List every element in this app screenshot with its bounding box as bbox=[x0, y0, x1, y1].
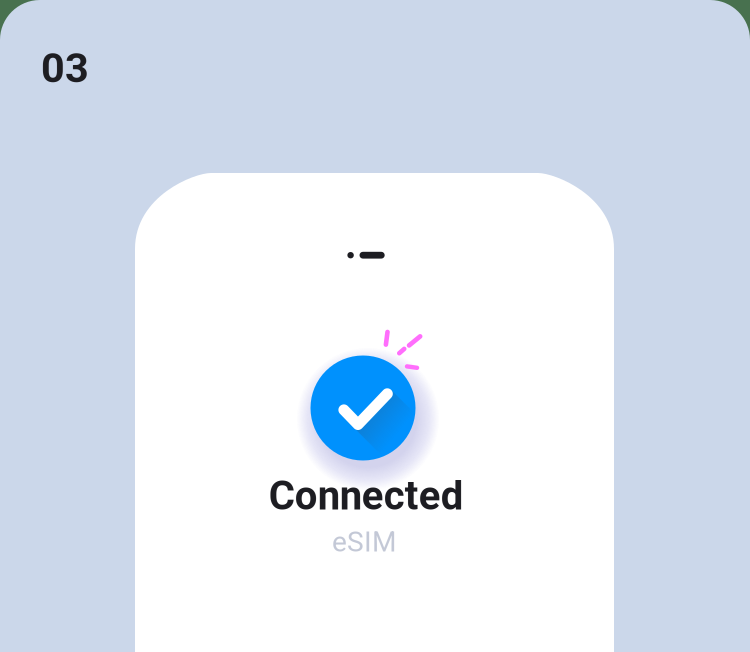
staticText: eSIM bbox=[332, 526, 396, 558]
staticText: 03 bbox=[41, 44, 89, 92]
staticText: Connected bbox=[269, 472, 464, 519]
